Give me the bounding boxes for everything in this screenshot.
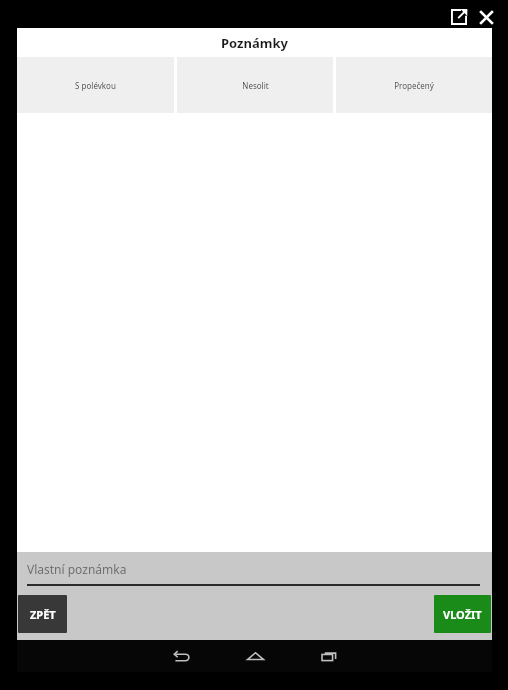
button[interactable]: Vlastní poznámka (27, 552, 480, 586)
button[interactable]: Nesolit (177, 57, 333, 113)
staticText: Nesolit (242, 80, 269, 91)
button[interactable]: ZPĚT (18, 595, 67, 633)
button[interactable]: Close (474, 5, 498, 29)
staticText: S polévkou (75, 80, 116, 91)
staticText: Vlastní poznámka (27, 561, 127, 577)
button[interactable]: Back (164, 640, 198, 672)
button[interactable]: Recent apps (312, 640, 346, 672)
staticText: ZPĚT (30, 607, 56, 622)
button[interactable]: Open in new window (447, 5, 471, 29)
staticText: Poznámky (221, 34, 288, 52)
button[interactable]: Home (238, 640, 272, 672)
button[interactable]: S polévkou (17, 57, 174, 113)
staticText: Propečený (394, 80, 434, 91)
button[interactable]: VLOŽIT (434, 595, 491, 633)
staticText: VLOŽIT (443, 607, 482, 622)
button[interactable]: Propečený (336, 57, 492, 113)
